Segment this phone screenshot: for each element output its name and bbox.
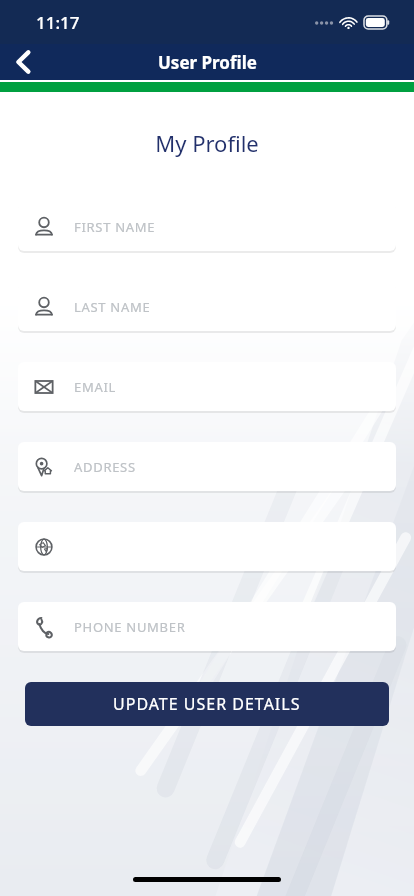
- staticText: FIRST NAME: [74, 218, 156, 236]
- button[interactable]: FIRST NAME: [18, 202, 396, 251]
- staticText: My Profile: [0, 128, 414, 158]
- staticText: ADDRESS: [74, 458, 136, 476]
- button[interactable]: ADDRESS: [18, 442, 396, 491]
- staticText: PHONE NUMBER: [74, 618, 186, 636]
- button[interactable]: Back: [0, 44, 46, 80]
- button[interactable]: PHONE NUMBER: [18, 602, 396, 651]
- button[interactable]: LAST NAME: [18, 282, 396, 331]
- staticText: EMAIL: [74, 378, 117, 396]
- button[interactable]: UPDATE USER DETAILS: [25, 682, 389, 726]
- staticText: UPDATE USER DETAILS: [113, 693, 301, 715]
- staticText: LAST NAME: [74, 298, 151, 316]
- button[interactable]: Country: [18, 522, 396, 571]
- staticText: 11:17: [36, 11, 80, 34]
- button[interactable]: EMAIL: [18, 362, 396, 411]
- staticText: User Profile: [158, 51, 257, 74]
